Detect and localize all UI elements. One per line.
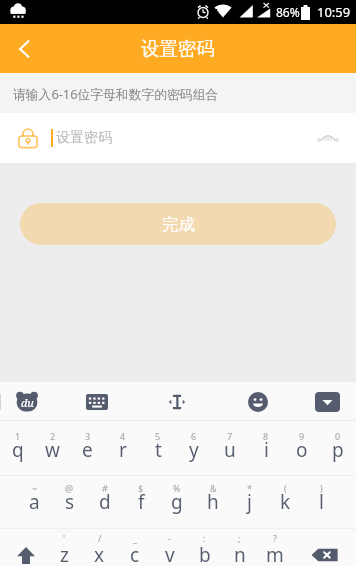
staticText: 完成 <box>162 214 195 235</box>
button[interactable]: Emoji <box>239 382 277 421</box>
button[interactable]: / <box>82 529 117 566</box>
staticText: 6 <box>191 430 197 442</box>
button[interactable]: 1 <box>0 421 35 475</box>
staticText: ; <box>238 532 241 544</box>
button[interactable]: 完成 <box>20 203 336 245</box>
button[interactable]: 4 <box>105 421 140 475</box>
button[interactable]: Hide keyboard <box>308 382 346 421</box>
button[interactable]: Shift <box>0 529 46 566</box>
staticText: @ <box>65 482 74 494</box>
staticText: n <box>234 542 246 566</box>
button[interactable]: 3 <box>70 421 105 475</box>
staticText: z <box>60 542 69 566</box>
staticText: ) <box>320 482 323 494</box>
staticText: : <box>203 532 206 544</box>
staticText: o <box>296 437 308 463</box>
staticText: r <box>119 437 127 463</box>
staticText: k <box>280 489 291 515</box>
button[interactable]: Keyboard layout <box>78 382 116 421</box>
button[interactable]: # <box>87 476 123 528</box>
button[interactable]: 0 <box>320 421 356 475</box>
button[interactable]: ; <box>222 529 257 566</box>
staticText: f <box>138 489 145 515</box>
staticText: ~ <box>32 482 38 494</box>
staticText: b <box>199 542 211 566</box>
staticText: j <box>247 489 252 515</box>
button[interactable]: * <box>231 476 267 528</box>
button[interactable]: 9 <box>284 421 320 475</box>
staticText: x <box>94 542 105 566</box>
staticText: 9 <box>299 430 305 442</box>
button[interactable]: ' <box>46 529 82 566</box>
staticText: $ <box>138 482 144 494</box>
staticText: / <box>98 532 102 544</box>
button[interactable]: 8 <box>248 421 284 475</box>
staticText: 10:59 <box>317 3 351 21</box>
staticText: ? <box>273 532 277 544</box>
button[interactable]: - <box>152 529 187 566</box>
button[interactable]: : <box>187 529 222 566</box>
button[interactable]: Move cursor <box>158 382 196 421</box>
button[interactable]: & <box>195 476 231 528</box>
staticText: 5 <box>155 430 161 442</box>
staticText: u <box>224 437 236 463</box>
button[interactable]: Show password <box>306 113 350 163</box>
staticText: - <box>168 532 171 544</box>
staticText: 0 <box>335 430 341 442</box>
staticText: l <box>319 489 324 515</box>
staticText: & <box>210 482 217 494</box>
staticText: w <box>45 437 60 463</box>
button[interactable]: Input method <box>8 382 46 421</box>
button[interactable]: ? <box>257 529 292 566</box>
staticText: p <box>332 437 344 463</box>
staticText: 2 <box>50 430 56 442</box>
staticText: e <box>82 437 93 463</box>
staticText: du <box>21 395 34 410</box>
button[interactable]: % <box>159 476 195 528</box>
staticText: ( <box>284 482 287 494</box>
staticText: g <box>171 489 183 515</box>
button[interactable]: 5 <box>140 421 176 475</box>
staticText: ' <box>63 532 66 544</box>
staticText: 8 <box>263 430 269 442</box>
staticText: d <box>99 489 111 515</box>
staticText: a <box>29 489 40 515</box>
button[interactable]: _ <box>117 529 152 566</box>
button[interactable]: $ <box>123 476 159 528</box>
staticText: _ <box>133 532 137 544</box>
staticText: t <box>155 437 162 463</box>
staticText: 86% <box>276 4 300 20</box>
staticText: 4 <box>120 430 126 442</box>
staticText: # <box>102 482 108 494</box>
staticText: s <box>65 489 75 515</box>
staticText: % <box>173 482 181 494</box>
button[interactable]: 7 <box>212 421 248 475</box>
button[interactable]: Back <box>0 24 48 73</box>
staticText: h <box>207 489 219 515</box>
staticText: i <box>264 437 269 463</box>
staticText: y <box>189 437 199 463</box>
staticText: m <box>266 542 284 566</box>
staticText: 7 <box>227 430 233 442</box>
button[interactable]: Backspace <box>292 529 356 566</box>
button[interactable]: @ <box>52 476 87 528</box>
staticText: q <box>12 437 24 463</box>
button[interactable]: 6 <box>176 421 212 475</box>
staticText: 1 <box>15 430 21 442</box>
staticText: v <box>165 542 175 566</box>
button[interactable]: ) <box>303 476 339 528</box>
button[interactable]: ~ <box>17 476 52 528</box>
staticText: 3 <box>85 430 91 442</box>
staticText: c <box>130 542 140 566</box>
staticText: 设置密码 <box>56 129 112 147</box>
button[interactable]: 2 <box>35 421 70 475</box>
button[interactable]: ( <box>267 476 303 528</box>
staticText: 设置密码 <box>141 37 215 60</box>
staticText: * <box>247 482 252 494</box>
staticText: 请输入6-16位字母和数字的密码组合 <box>13 85 219 102</box>
